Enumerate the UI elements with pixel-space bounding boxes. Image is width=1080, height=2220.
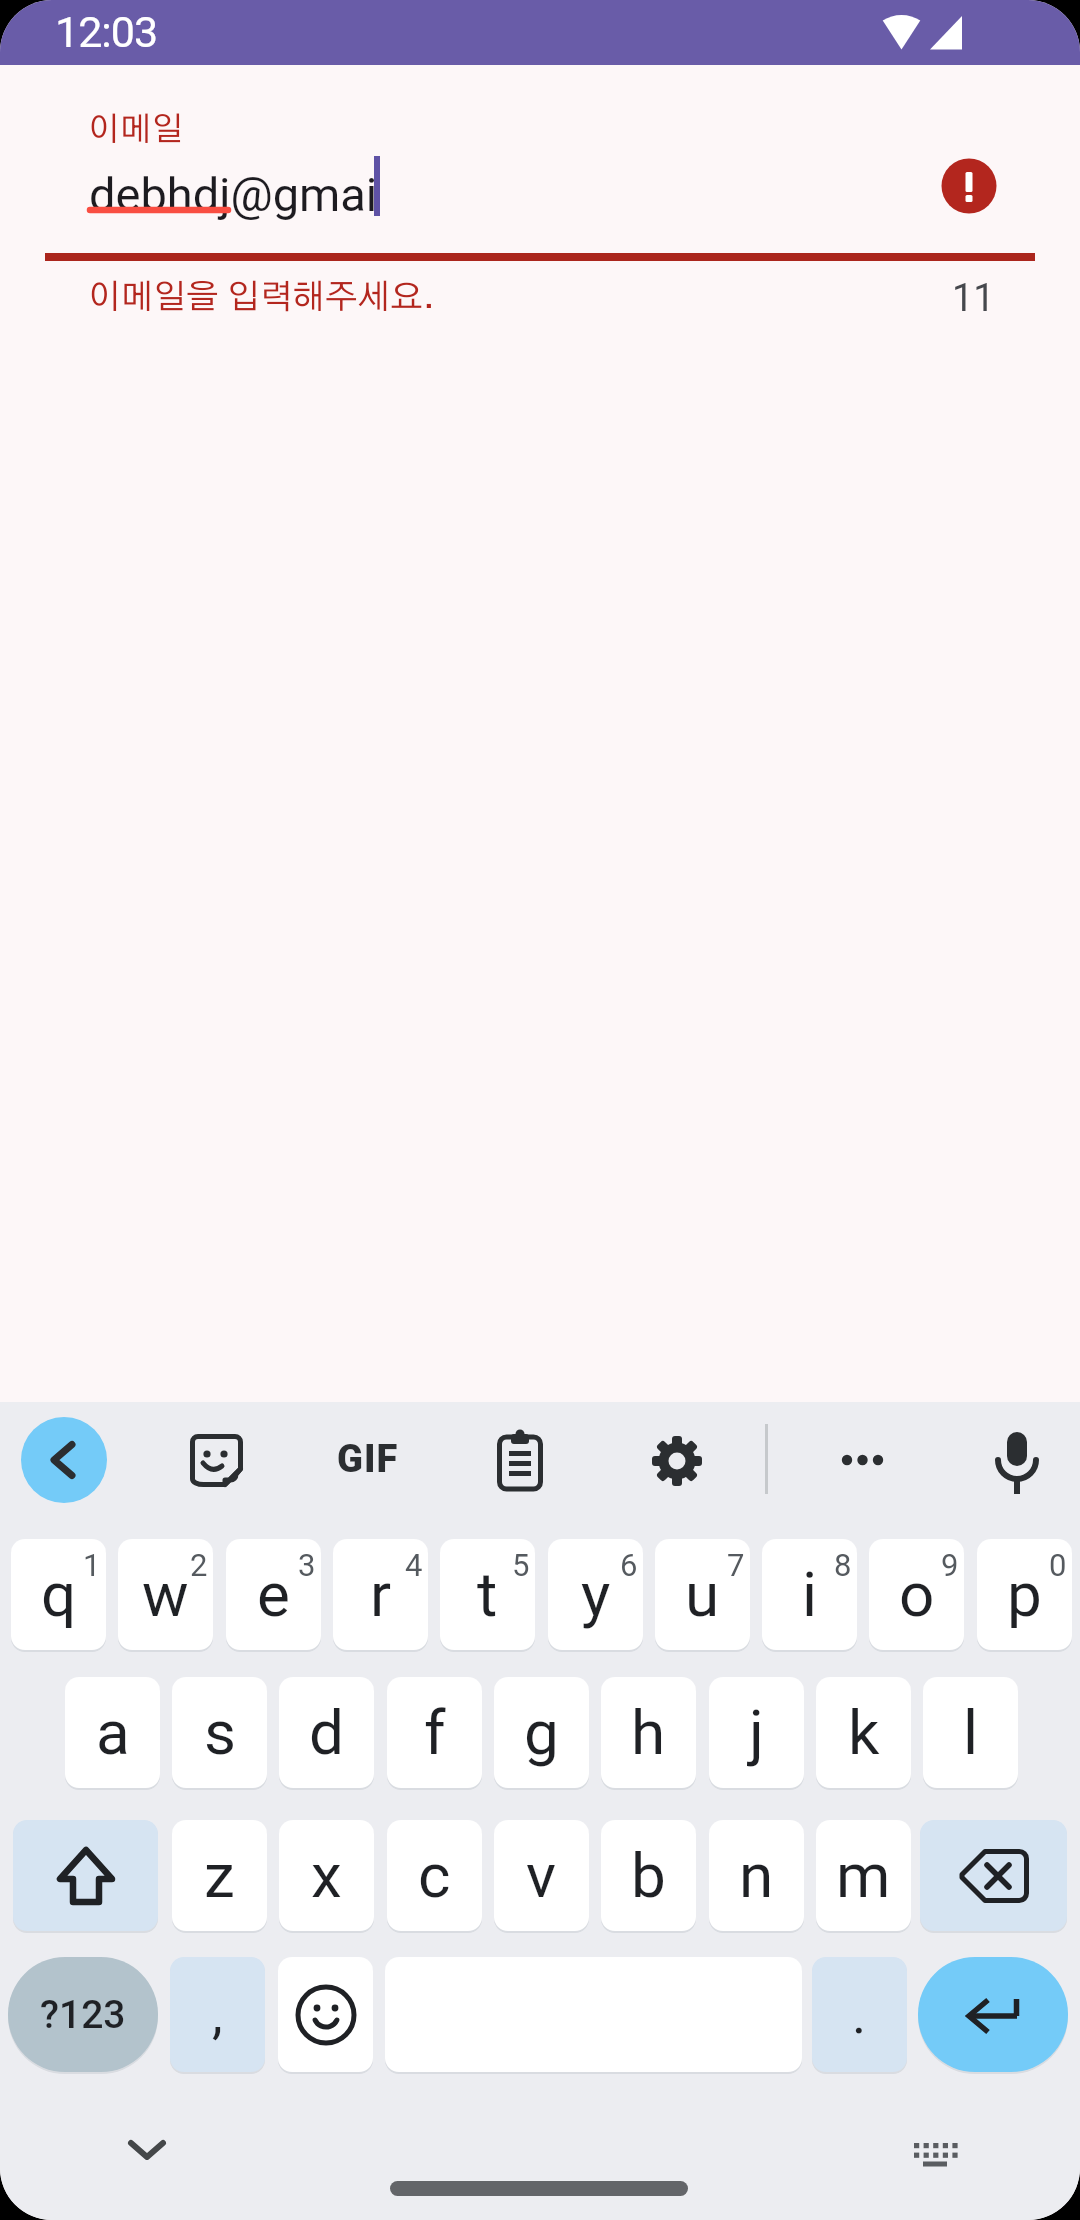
staticText: g: [524, 1696, 559, 1769]
staticText: 0: [1049, 1547, 1067, 1583]
button[interactable]: j: [709, 1677, 804, 1788]
button[interactable]: [920, 1820, 1067, 1931]
staticText: j: [749, 1696, 764, 1769]
button[interactable]: p: [977, 1539, 1072, 1650]
button[interactable]: z: [172, 1820, 267, 1931]
button[interactable]: e: [226, 1539, 321, 1650]
staticText: 4: [405, 1547, 423, 1583]
button[interactable]: b: [601, 1820, 696, 1931]
staticText: u: [685, 1558, 720, 1631]
button[interactable]: h: [601, 1677, 696, 1788]
staticText: x: [311, 1839, 342, 1912]
button[interactable]: l: [923, 1677, 1018, 1788]
button[interactable]: [115, 2127, 179, 2175]
button[interactable]: ,: [170, 1957, 265, 2072]
staticText: t: [477, 1558, 498, 1631]
staticText: w: [142, 1558, 189, 1631]
button[interactable]: a: [65, 1677, 160, 1788]
button[interactable]: [497, 1430, 543, 1492]
staticText: y: [581, 1558, 611, 1631]
staticText: o: [899, 1558, 935, 1631]
staticText: 3: [298, 1547, 316, 1583]
staticText: .: [852, 1983, 867, 2046]
button[interactable]: v: [494, 1820, 589, 1931]
button[interactable]: [830, 1422, 892, 1494]
staticText: 2: [190, 1547, 208, 1583]
button[interactable]: d: [279, 1677, 374, 1788]
staticText: e: [257, 1558, 290, 1631]
button[interactable]: t: [440, 1539, 535, 1650]
staticText: k: [848, 1696, 880, 1769]
button[interactable]: [13, 1820, 158, 1931]
button[interactable]: r: [333, 1539, 428, 1650]
staticText: 이메일: [88, 114, 184, 147]
staticText: i: [802, 1558, 818, 1631]
staticText: h: [631, 1696, 666, 1769]
staticText: 9: [941, 1547, 959, 1583]
button[interactable]: [910, 2138, 960, 2174]
button[interactable]: k: [816, 1677, 911, 1788]
button[interactable]: w: [118, 1539, 213, 1650]
button[interactable]: f: [387, 1677, 482, 1788]
staticText: q: [41, 1558, 77, 1631]
staticText: 1: [83, 1547, 101, 1583]
button[interactable]: i: [762, 1539, 857, 1650]
staticText: 8: [834, 1547, 852, 1583]
button[interactable]: ?123: [8, 1957, 158, 2072]
staticText: GIF: [337, 1437, 399, 1482]
staticText: debhdj@gmai: [89, 167, 378, 222]
staticText: ?123: [40, 1992, 126, 2038]
button[interactable]: [189, 1433, 244, 1488]
staticText: n: [739, 1839, 774, 1912]
staticText: 7: [727, 1547, 745, 1583]
button[interactable]: n: [709, 1820, 804, 1931]
button[interactable]: o: [869, 1539, 964, 1650]
button[interactable]: [918, 1957, 1068, 2072]
staticText: 이메일을 입력해주세요.: [88, 281, 435, 315]
button[interactable]: GIF: [337, 1437, 399, 1482]
button[interactable]: m: [816, 1820, 911, 1931]
staticText: d: [309, 1696, 344, 1769]
button[interactable]: [278, 1957, 373, 2072]
staticText: 12:03: [55, 7, 158, 57]
staticText: ,: [212, 1983, 223, 2046]
button[interactable]: q: [11, 1539, 106, 1650]
button[interactable]: .: [812, 1957, 907, 2072]
staticText: v: [526, 1839, 557, 1912]
staticText: s: [204, 1696, 236, 1769]
button[interactable]: s: [172, 1677, 267, 1788]
staticText: m: [836, 1839, 891, 1912]
staticText: 11: [952, 276, 995, 321]
staticText: l: [963, 1696, 979, 1769]
button[interactable]: u: [655, 1539, 750, 1650]
staticText: p: [1007, 1558, 1042, 1631]
button[interactable]: c: [387, 1820, 482, 1931]
staticText: 5: [512, 1547, 530, 1583]
button[interactable]: [650, 1434, 704, 1488]
staticText: 6: [620, 1547, 638, 1583]
staticText: a: [96, 1696, 130, 1769]
button[interactable]: x: [279, 1820, 374, 1931]
button[interactable]: g: [494, 1677, 589, 1788]
button[interactable]: [21, 1417, 107, 1503]
button[interactable]: y: [548, 1539, 643, 1650]
staticText: c: [418, 1839, 451, 1912]
staticText: f: [424, 1696, 446, 1769]
staticText: r: [370, 1558, 392, 1631]
staticText: b: [631, 1839, 666, 1912]
staticText: z: [204, 1839, 235, 1912]
button[interactable]: [995, 1429, 1039, 1493]
